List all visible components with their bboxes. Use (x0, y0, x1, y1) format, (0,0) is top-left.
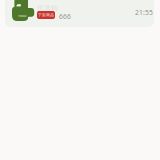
button[interactable]: 优选购 (5, 0, 154, 27)
staticText: 666 (59, 12, 71, 21)
staticText: 下架商品 (38, 12, 54, 17)
staticText: 21:55 (135, 8, 153, 17)
staticText: 优选购 (37, 4, 58, 12)
